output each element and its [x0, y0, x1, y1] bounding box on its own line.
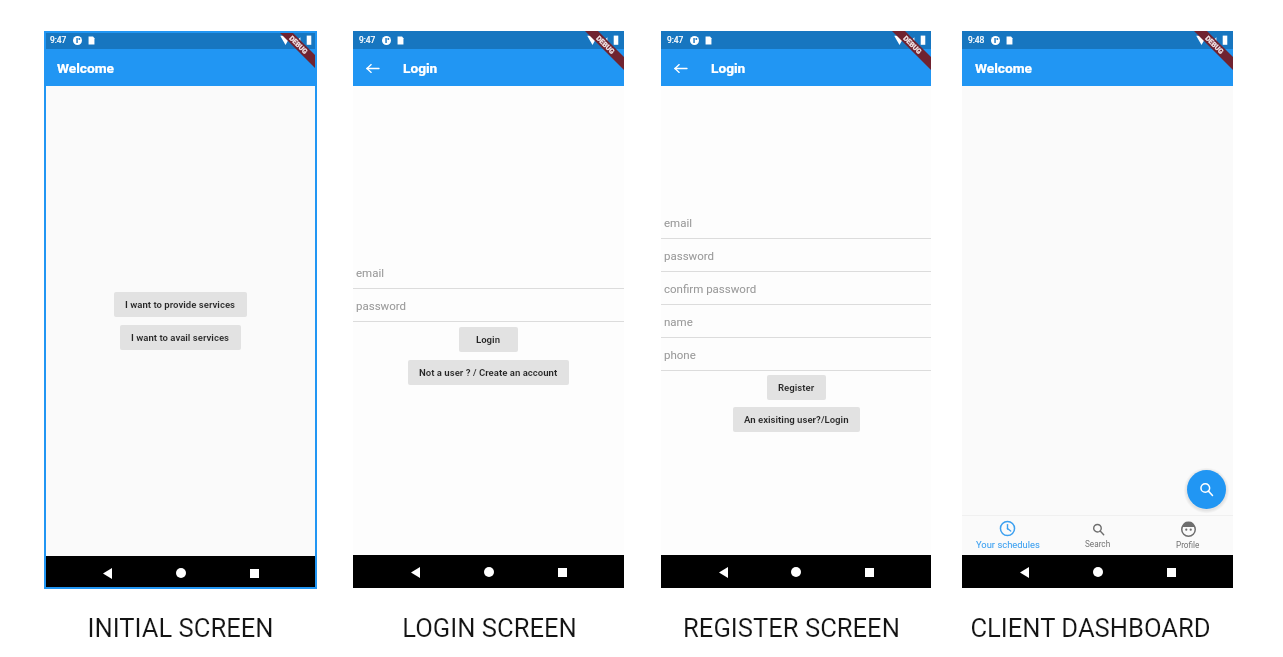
staticText: An exisiting user?/Login: [744, 414, 849, 425]
button[interactable]: Profile: [1143, 516, 1233, 555]
staticText: CLIENT DASHBOARD: [970, 613, 1211, 643]
staticText: I want to provide services: [125, 299, 236, 310]
staticText: Register: [778, 382, 815, 393]
staticText: name: [664, 315, 693, 328]
button[interactable]: I want to provide services: [114, 292, 247, 317]
button[interactable]: Back: [669, 57, 691, 79]
staticText: password: [356, 299, 407, 312]
button[interactable]: Back: [96, 562, 118, 584]
staticText: Login: [711, 60, 746, 76]
button[interactable]: Home: [170, 562, 192, 584]
staticText: 9:48: [968, 35, 985, 45]
staticText: REGISTER SCREEN: [683, 613, 900, 643]
button[interactable]: Back: [361, 57, 383, 79]
staticText: LOGIN SCREEN: [402, 613, 577, 643]
button[interactable]: Login: [459, 327, 518, 352]
button[interactable]: Recent apps: [551, 561, 573, 583]
button[interactable]: Search: [1187, 470, 1226, 509]
staticText: Profile: [1176, 540, 1200, 550]
button[interactable]: Back: [1013, 561, 1035, 583]
staticText: 9:47: [667, 35, 684, 45]
staticText: INITIAL SCREEN: [87, 613, 274, 643]
button[interactable]: Home: [1087, 561, 1109, 583]
staticText: DEBUG: [287, 34, 309, 56]
staticText: Login: [403, 60, 438, 76]
button[interactable]: Home: [785, 561, 807, 583]
button[interactable]: An exisiting user?/Login: [733, 407, 860, 432]
staticText: 9:47: [359, 35, 376, 45]
button[interactable]: Recent apps: [858, 561, 880, 583]
staticText: Welcome: [57, 60, 114, 76]
button[interactable]: Recent apps: [1160, 561, 1182, 583]
staticText: Not a user ? / Create an account: [419, 367, 558, 378]
staticText: 9:47: [50, 35, 67, 45]
staticText: confirm password: [664, 282, 757, 295]
button[interactable]: Not a user ? / Create an account: [408, 360, 569, 385]
button[interactable]: I want to avail services: [120, 325, 241, 350]
button[interactable]: Your schedules: [962, 516, 1053, 555]
staticText: phone: [664, 348, 696, 361]
staticText: Welcome: [975, 60, 1032, 76]
button[interactable]: Home: [478, 561, 500, 583]
button[interactable]: Back: [404, 561, 426, 583]
staticText: Your schedules: [976, 539, 1040, 550]
staticText: I want to avail services: [131, 332, 230, 343]
button[interactable]: Register: [767, 375, 826, 400]
button[interactable]: Search: [1053, 516, 1143, 555]
button[interactable]: Recent apps: [243, 562, 265, 584]
staticText: Search: [1085, 539, 1111, 549]
staticText: email: [356, 266, 385, 279]
staticText: DEBUG: [901, 34, 923, 56]
staticText: email: [664, 216, 693, 229]
staticText: password: [664, 249, 715, 262]
staticText: DEBUG: [1203, 34, 1225, 56]
button[interactable]: Back: [712, 561, 734, 583]
staticText: Login: [476, 334, 501, 345]
staticText: DEBUG: [594, 34, 616, 56]
